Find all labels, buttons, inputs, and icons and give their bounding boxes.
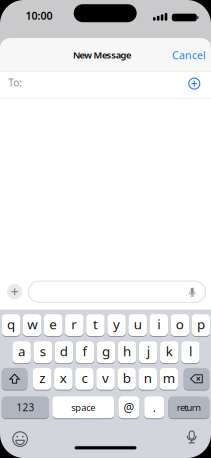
button[interactable]: return (168, 396, 209, 419)
staticText: c (81, 369, 87, 387)
button[interactable]: x (54, 367, 73, 390)
staticText: return (177, 401, 201, 414)
staticText: 123 (16, 400, 34, 414)
staticText: o (176, 315, 184, 333)
button[interactable]: b (117, 367, 136, 390)
button[interactable]: d (55, 341, 73, 364)
staticText: 10:00 (25, 8, 52, 23)
button[interactable]: q (2, 314, 20, 336)
staticText: . (153, 399, 156, 415)
staticText: s (40, 342, 46, 360)
staticText: f (82, 342, 87, 360)
button[interactable]: l (181, 341, 200, 364)
button[interactable] (2, 367, 27, 390)
staticText: @ (123, 399, 134, 415)
button[interactable]: v (96, 367, 115, 390)
staticText: q (7, 315, 15, 333)
staticText: l (189, 342, 192, 360)
staticText: p (197, 315, 205, 333)
staticText: k (166, 342, 173, 360)
button[interactable]: c (75, 367, 94, 390)
staticText: To: (8, 76, 22, 89)
staticText: u (134, 315, 142, 333)
button[interactable]: s (33, 341, 52, 364)
button[interactable]: . (144, 396, 164, 419)
staticText: space (71, 401, 95, 414)
button[interactable]: g (97, 341, 115, 364)
button[interactable]: space (52, 396, 114, 419)
button[interactable] (7, 284, 22, 299)
button[interactable]: @ (118, 396, 139, 419)
staticText: z (39, 369, 45, 387)
button[interactable]: h (118, 341, 136, 364)
staticText: b (123, 369, 131, 387)
button[interactable] (187, 77, 201, 91)
button[interactable]: z (33, 367, 51, 390)
staticText: g (102, 342, 110, 360)
staticText: x (60, 369, 67, 387)
button[interactable] (12, 431, 28, 447)
staticText: n (144, 369, 152, 387)
button[interactable]: t (86, 314, 105, 336)
staticText: a (18, 342, 25, 360)
button[interactable]: 123 (2, 396, 49, 419)
staticText: New Message (73, 49, 131, 61)
button[interactable] (0, 72, 211, 98)
staticText: m (163, 369, 175, 387)
staticText: i (157, 315, 160, 333)
button[interactable]: Cancel (172, 48, 206, 62)
button[interactable]: i (149, 314, 168, 336)
staticText: Cancel (172, 48, 206, 62)
button[interactable]: n (138, 367, 157, 390)
button[interactable] (184, 367, 209, 390)
staticText: w (27, 315, 37, 333)
button[interactable]: y (107, 314, 126, 336)
staticText: h (123, 342, 131, 360)
staticText: y (113, 315, 120, 333)
button[interactable]: e (44, 314, 62, 336)
staticText: v (102, 369, 109, 387)
button[interactable] (28, 281, 205, 302)
button[interactable]: o (171, 314, 189, 336)
button[interactable]: j (139, 341, 157, 364)
staticText: d (60, 342, 68, 360)
staticText: r (71, 315, 77, 333)
staticText: e (49, 315, 57, 333)
button[interactable]: p (192, 314, 210, 336)
button[interactable]: k (160, 341, 179, 364)
button[interactable] (184, 284, 200, 300)
button[interactable] (184, 430, 200, 446)
button[interactable]: r (65, 314, 84, 336)
button[interactable]: w (23, 314, 41, 336)
staticText: t (93, 315, 98, 333)
button[interactable]: a (12, 341, 31, 364)
button[interactable]: f (76, 341, 94, 364)
button[interactable]: u (128, 314, 147, 336)
button[interactable]: m (160, 367, 178, 390)
staticText: j (147, 342, 150, 360)
